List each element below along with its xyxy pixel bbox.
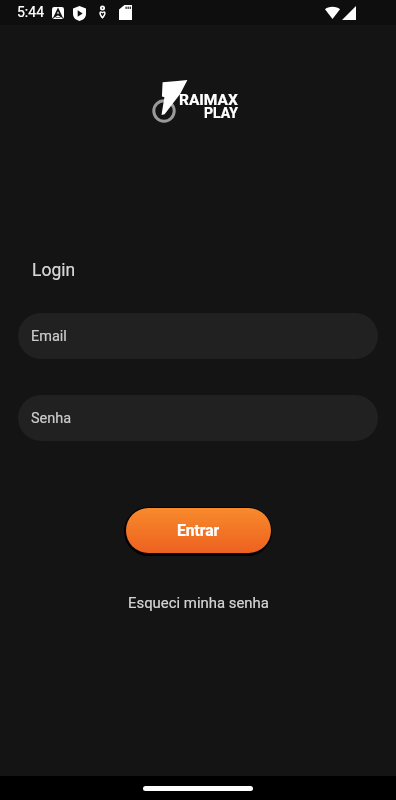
staticText: Email [31, 328, 67, 345]
staticText: 5:44 [17, 4, 44, 20]
staticText: Senha [31, 410, 72, 427]
button[interactable]: Senha [18, 395, 378, 441]
button[interactable]: Esqueci minha senha [118, 591, 279, 614]
staticText: RAIMAX [179, 91, 238, 109]
staticText: Esqueci minha senha [128, 594, 269, 611]
button[interactable]: Entrar [126, 508, 271, 553]
staticText: Entrar [177, 522, 220, 540]
button[interactable]: Email [18, 313, 378, 359]
staticText: PLAY [204, 105, 238, 121]
staticText: Login [32, 260, 76, 281]
